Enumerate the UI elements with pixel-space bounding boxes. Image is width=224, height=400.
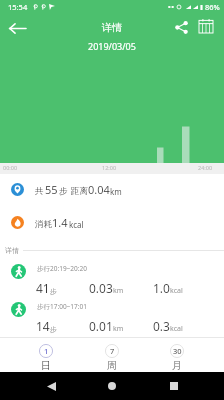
staticText: 7 <box>110 346 115 356</box>
button[interactable]: 共 <box>0 174 224 204</box>
staticText: 55 <box>45 182 58 197</box>
staticText: 1.0 <box>153 280 170 296</box>
staticText: 日 <box>41 359 51 372</box>
staticText: 步行20:19~20:20 <box>37 264 87 273</box>
staticText: 1 <box>44 346 49 356</box>
staticText: 0.01 <box>89 318 113 334</box>
staticText: 月 <box>172 359 182 372</box>
staticText: kcal <box>170 324 183 334</box>
staticText: 86% <box>205 2 220 12</box>
staticText: 41 <box>36 280 50 296</box>
button[interactable]: 消耗 <box>0 207 224 237</box>
button[interactable]: Calendar <box>194 14 218 38</box>
staticText: km <box>110 186 122 197</box>
button[interactable]: 30 <box>160 337 194 372</box>
button[interactable]: 步行20:19~20:20 <box>0 258 224 296</box>
staticText: kcal <box>170 286 183 296</box>
staticText: kcal <box>69 219 84 230</box>
staticText: 距离 <box>71 186 88 197</box>
button[interactable]: Recents <box>163 375 185 397</box>
staticText: 15:54 <box>8 2 28 12</box>
button[interactable]: 7 <box>95 337 129 372</box>
staticText: 共 <box>35 186 44 197</box>
staticText: 步 <box>59 186 68 197</box>
staticText: 2019/03/05 <box>88 40 136 52</box>
staticText: km <box>113 324 124 334</box>
button[interactable]: Back <box>40 375 62 397</box>
staticText: 消耗 <box>35 219 52 230</box>
staticText: 0.3 <box>153 318 170 334</box>
staticText: 步 <box>50 325 57 334</box>
staticText: 12:00 <box>102 164 117 171</box>
button[interactable]: Share <box>169 15 193 39</box>
staticText: 30 <box>173 346 182 356</box>
staticText: 1.4 <box>52 215 68 230</box>
staticText: 步 <box>50 287 57 296</box>
button[interactable]: Home <box>101 375 123 397</box>
staticText: 24:00 <box>198 164 213 171</box>
staticText: 详情 <box>5 246 19 255</box>
button[interactable]: 1 <box>29 337 63 372</box>
staticText: 00:00 <box>3 164 18 171</box>
staticText: 周 <box>107 359 117 372</box>
staticText: 14 <box>36 318 50 334</box>
button[interactable]: 步行17:00~17:01 <box>0 296 224 334</box>
staticText: 0.03 <box>89 280 113 296</box>
staticText: 详情 <box>102 21 122 34</box>
button[interactable]: Back <box>3 14 31 42</box>
staticText: 0.04 <box>88 182 110 197</box>
staticText: km <box>113 286 124 296</box>
staticText: 步行17:00~17:01 <box>37 302 87 311</box>
